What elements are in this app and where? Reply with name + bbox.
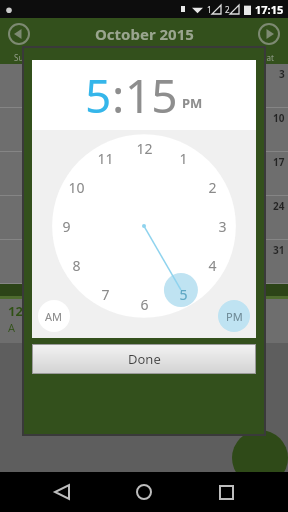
staticText: 2 <box>208 178 217 197</box>
staticText: Sun <box>14 52 29 63</box>
button[interactable]: 28 <box>124 240 165 283</box>
button[interactable]: 6 <box>83 108 124 151</box>
staticText: 24 <box>273 199 285 213</box>
button[interactable]: 29 <box>83 64 124 107</box>
staticText: 23 <box>232 199 244 213</box>
button[interactable]: 29 <box>165 240 206 283</box>
button[interactable]: 25 <box>0 240 42 283</box>
button[interactable]: 18 <box>0 196 42 239</box>
staticText: 9 <box>62 217 71 236</box>
staticText: 1 <box>207 4 212 15</box>
button[interactable]: 10 <box>247 108 288 151</box>
staticText: 27 <box>27 67 39 81</box>
staticText: 8 <box>72 256 81 275</box>
button[interactable]: PM <box>182 94 203 112</box>
button[interactable]: 30 <box>206 240 247 283</box>
button[interactable]: 9 <box>206 108 247 151</box>
button[interactable]: 5 <box>42 108 83 151</box>
staticText: Tue <box>97 52 111 63</box>
staticText: 5 <box>179 285 188 304</box>
staticText: 15 <box>125 64 178 127</box>
staticText: 2 <box>225 4 230 15</box>
staticText: 17:15 <box>255 2 284 17</box>
button[interactable]: Home <box>124 472 164 512</box>
staticText: 28 <box>150 243 162 257</box>
button[interactable]: Back <box>42 472 82 512</box>
button[interactable]: 14 <box>124 152 165 195</box>
button[interactable]: PM <box>218 300 250 332</box>
button[interactable]: 17 <box>247 152 288 195</box>
staticText: 10 <box>273 111 285 125</box>
staticText: 6 <box>115 111 121 125</box>
button[interactable]: 26 <box>42 240 83 283</box>
button[interactable]: 5 <box>85 64 112 127</box>
button[interactable]: Add event <box>232 430 288 486</box>
button[interactable]: 13 <box>83 152 124 195</box>
button[interactable]: 27 <box>0 64 42 107</box>
button[interactable]: 7 <box>124 108 165 151</box>
staticText: 31 <box>273 243 285 257</box>
button[interactable]: AM <box>38 300 70 332</box>
staticText: Thu <box>178 52 193 63</box>
button[interactable]: 4 <box>0 108 42 151</box>
staticText: 7 <box>156 111 162 125</box>
button[interactable]: 8 <box>165 108 206 151</box>
button[interactable]: 24 <box>247 196 288 239</box>
button[interactable]: 19 <box>42 196 83 239</box>
staticText: A <box>8 320 16 335</box>
staticText: 6 <box>140 295 149 314</box>
staticText: 12 <box>136 139 153 158</box>
staticText: 30 <box>150 67 162 81</box>
button[interactable]: Recents <box>206 472 246 512</box>
staticText: October 2015 <box>95 24 194 44</box>
staticText: 4 <box>208 256 217 275</box>
button[interactable]: 15 <box>165 152 206 195</box>
button[interactable]: Previous month <box>6 21 32 47</box>
button[interactable]: 1 <box>165 64 206 107</box>
button[interactable]: 23 <box>206 196 247 239</box>
button[interactable]: Next month <box>256 21 282 47</box>
button[interactable]: 31 <box>247 240 288 283</box>
staticText: 13 <box>109 155 121 169</box>
button[interactable]: 12 <box>42 152 83 195</box>
staticText: Sat <box>262 52 274 63</box>
button[interactable]: Done <box>33 345 255 373</box>
staticText: AM <box>45 309 63 324</box>
staticText: PM <box>182 94 203 112</box>
button[interactable]: 16 <box>206 152 247 195</box>
button[interactable]: 3 <box>247 64 288 107</box>
staticText: 12 <box>8 302 23 320</box>
button[interactable]: 30 <box>124 64 165 107</box>
staticText: : <box>112 64 125 127</box>
staticText: 17 <box>273 155 285 169</box>
staticText: Done <box>128 350 161 368</box>
staticText: 3 <box>279 67 285 81</box>
staticText: 25 <box>27 243 39 257</box>
staticText: 3 <box>218 217 227 236</box>
staticText: 11 <box>97 149 114 168</box>
staticText: Fri <box>222 52 232 63</box>
button[interactable]: 15 <box>125 64 178 127</box>
button[interactable]: 21 <box>124 196 165 239</box>
button[interactable]: 11 <box>0 152 42 195</box>
